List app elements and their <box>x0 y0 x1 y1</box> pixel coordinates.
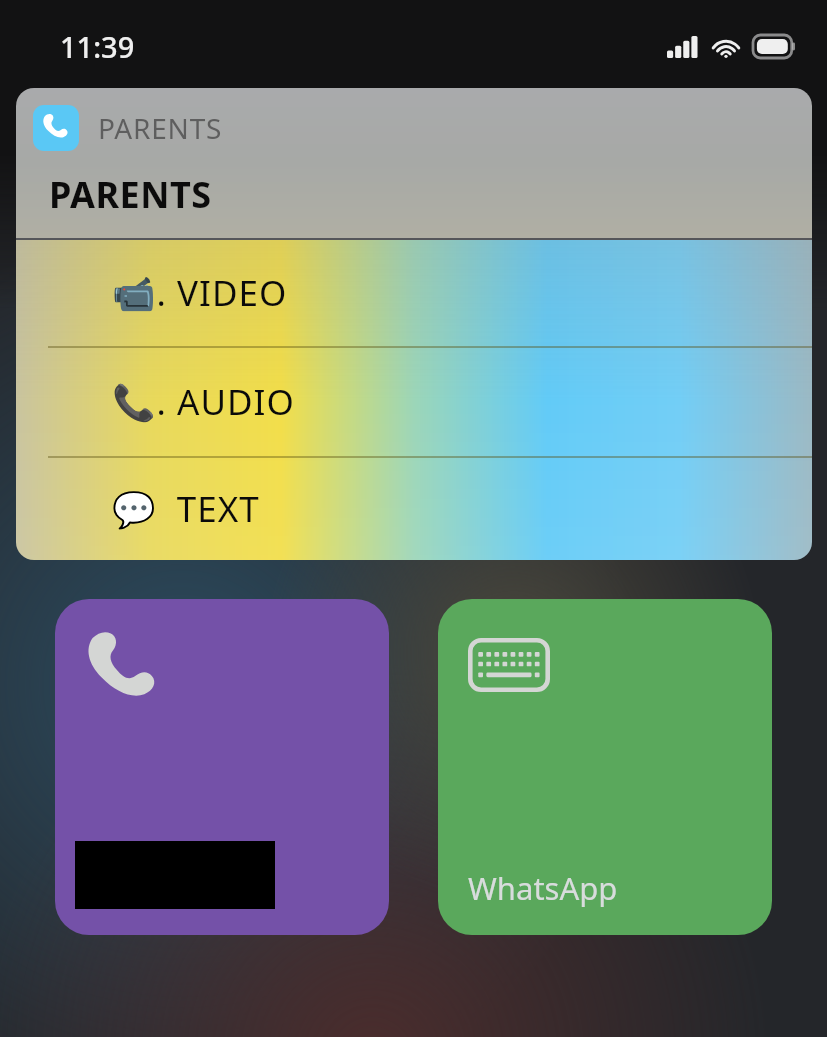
staticText: PARENTS <box>49 170 212 219</box>
button[interactable]: Parents <box>438 310 772 550</box>
staticText: WhatsApp <box>468 867 618 909</box>
button[interactable] <box>55 310 389 550</box>
button[interactable]: Call <box>55 599 389 935</box>
other: Call <box>85 632 161 708</box>
staticText: 💬 TEXT <box>112 485 260 533</box>
staticText: 📞. AUDIO <box>112 378 295 426</box>
staticText: PARENTS <box>98 109 223 147</box>
button[interactable]: PARENTS <box>33 105 223 151</box>
staticText: Parents <box>468 482 580 524</box>
staticText: 📹. VIDEO <box>112 269 288 317</box>
button[interactable]: 📹. VIDEO <box>16 240 812 346</box>
button[interactable]: Message <box>438 599 772 935</box>
button[interactable]: 💬 TEXT <box>16 458 812 560</box>
button[interactable]: 📞. AUDIO <box>16 348 812 456</box>
staticText: 11:39 <box>60 27 135 66</box>
other: Message <box>468 638 550 692</box>
